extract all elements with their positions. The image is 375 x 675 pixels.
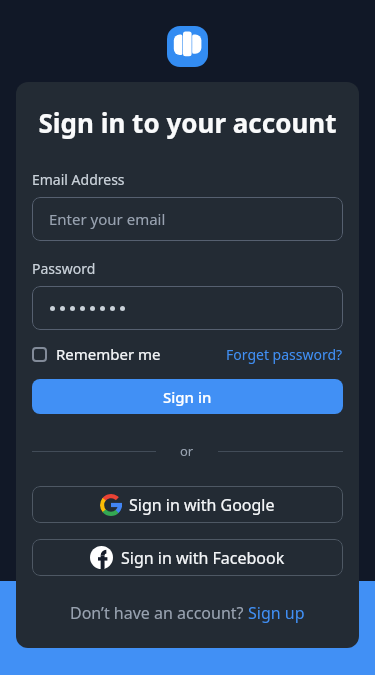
button[interactable]: Sign in with Google xyxy=(32,486,343,523)
staticText: Sign in with Google xyxy=(129,494,275,516)
staticText: Password xyxy=(32,259,96,278)
button[interactable]: Sign up xyxy=(248,602,305,624)
staticText: Don’t have an account? xyxy=(70,602,248,624)
button[interactable] xyxy=(32,286,343,330)
staticText: Email Address xyxy=(32,170,125,189)
button[interactable]: Forget password? xyxy=(226,345,343,364)
staticText: Enter your email xyxy=(49,209,166,229)
button[interactable]: Remember me xyxy=(32,344,161,364)
button[interactable]: Sign in xyxy=(32,379,343,414)
staticText: Sign in to your account xyxy=(32,105,343,140)
button[interactable]: Enter your email xyxy=(32,197,343,241)
staticText: Sign in with Facebook xyxy=(121,547,285,569)
staticText: Sign in xyxy=(163,387,212,407)
staticText: Remember me xyxy=(56,344,161,364)
button[interactable]: Sign in with Facebook xyxy=(32,539,343,576)
staticText: or xyxy=(180,442,194,460)
